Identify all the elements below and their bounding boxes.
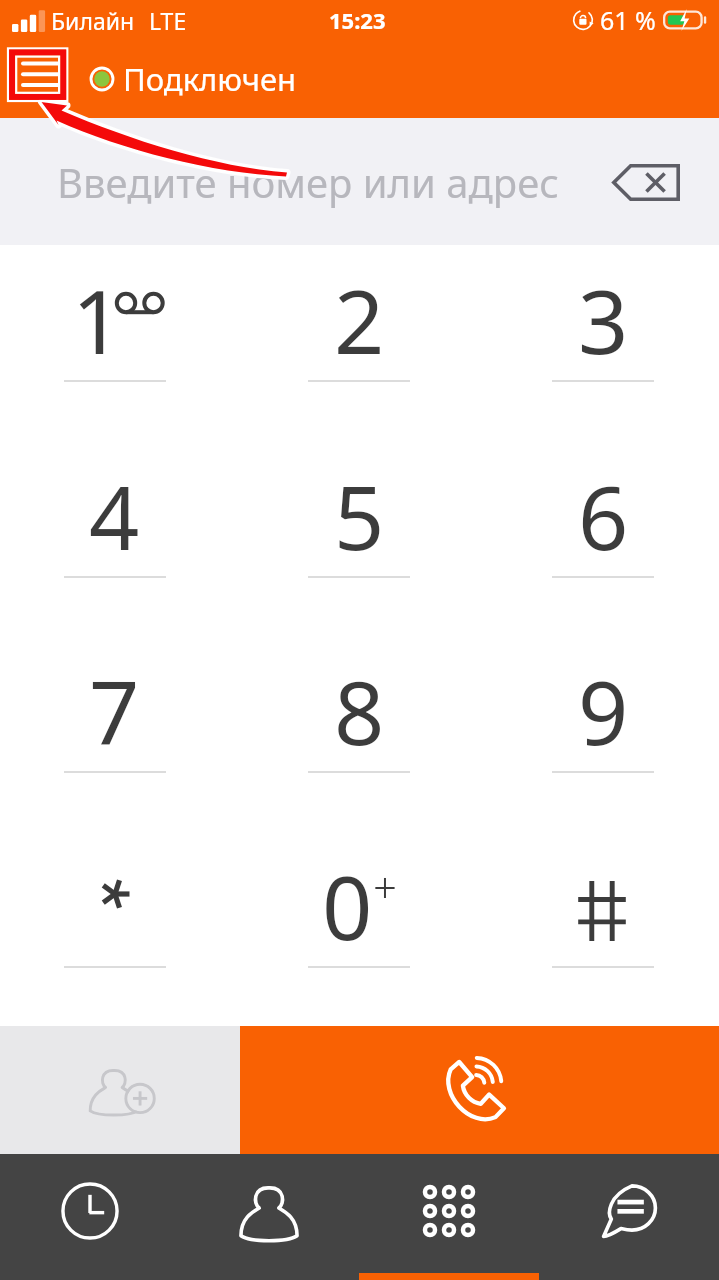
button[interactable] (0, 831, 237, 1026)
staticText: 8 (334, 651, 385, 771)
staticText: 15:23 (329, 5, 386, 35)
staticText: 1 (72, 260, 123, 380)
staticText: LTE (149, 5, 187, 36)
button[interactable]: Dialpad (359, 1154, 539, 1280)
button[interactable]: 2 (237, 245, 481, 441)
button[interactable] (481, 831, 719, 1026)
staticText: Введите номер или адрес (57, 155, 559, 209)
button[interactable]: 5 (237, 441, 481, 636)
button[interactable]: Menu (7, 51, 69, 107)
button[interactable]: 3 (481, 245, 719, 441)
button[interactable]: Contacts (179, 1154, 359, 1280)
staticText: Подключен (123, 58, 297, 100)
staticText: 6 (578, 456, 629, 576)
staticText: 0 (322, 846, 373, 966)
staticText: 61 % (600, 3, 656, 37)
button[interactable]: Backspace (611, 147, 681, 217)
staticText: + (373, 858, 397, 915)
button[interactable]: Recents (0, 1154, 179, 1280)
button[interactable]: Call (240, 1026, 719, 1154)
button[interactable]: Messages (539, 1154, 719, 1280)
staticText: 9 (578, 651, 629, 771)
staticText: 5 (334, 456, 385, 576)
staticText: 2 (334, 260, 385, 380)
staticText: Билайн (51, 5, 135, 36)
button[interactable]: 1 (0, 245, 237, 441)
button[interactable]: 6 (481, 441, 719, 636)
button[interactable]: 4 (0, 441, 237, 636)
button[interactable]: 0 (237, 831, 481, 1026)
staticText: 7 (89, 651, 140, 771)
staticText: 4 (89, 456, 140, 576)
button[interactable]: Add contact (0, 1026, 240, 1154)
staticText: 3 (578, 260, 629, 380)
button[interactable]: 8 (237, 636, 481, 831)
button[interactable]: 7 (0, 636, 237, 831)
button[interactable]: 9 (481, 636, 719, 831)
